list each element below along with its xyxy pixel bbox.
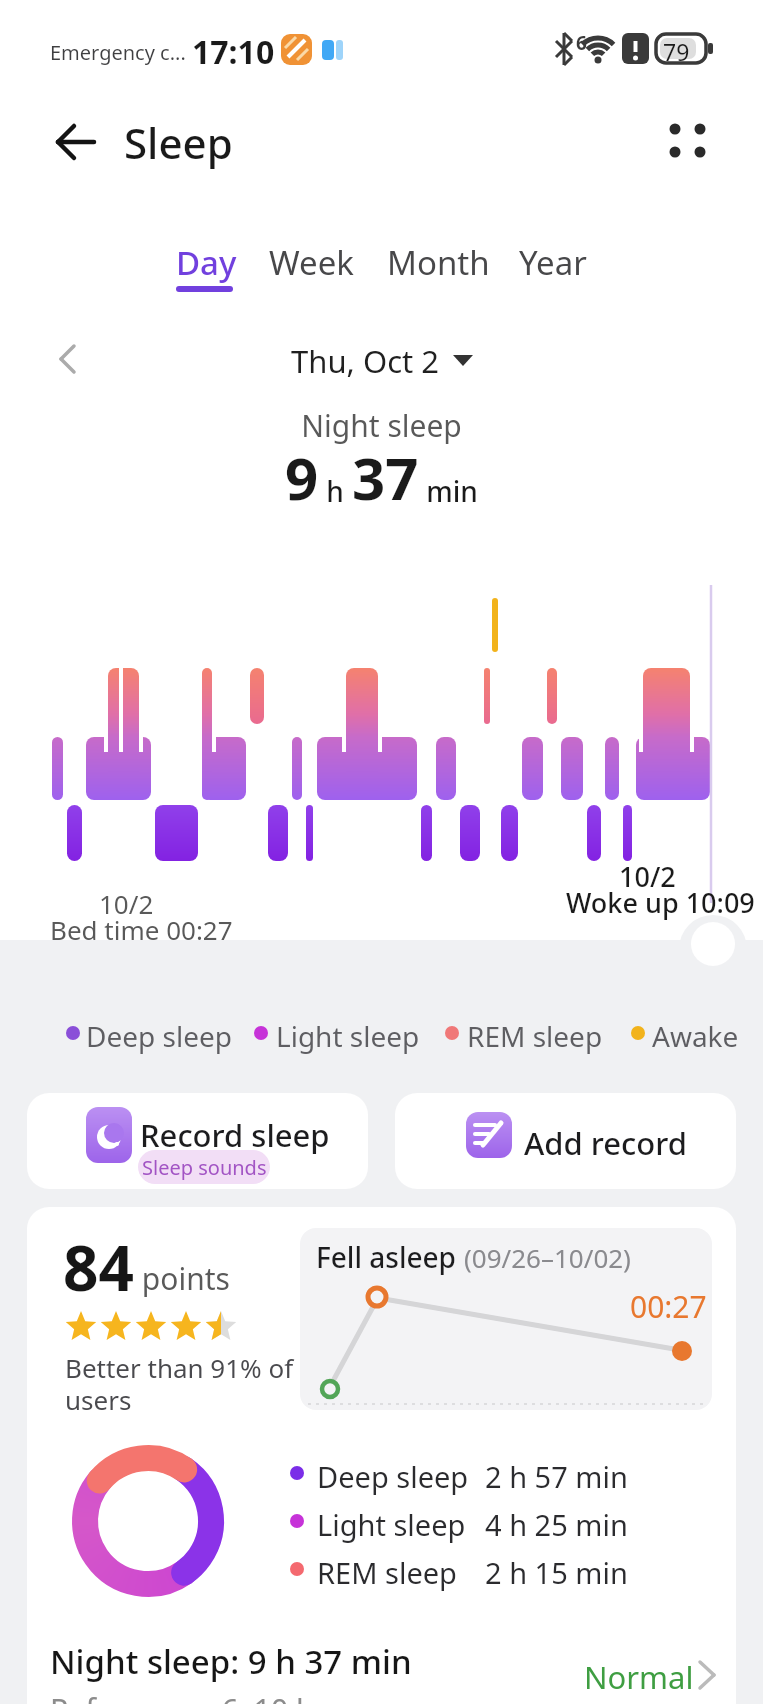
- staticText: REM sleep: [467, 1017, 603, 1055]
- staticText: users: [65, 1382, 132, 1417]
- button[interactable]: [48, 338, 92, 382]
- staticText: 37: [352, 438, 419, 517]
- staticText: 00:27: [630, 1286, 707, 1327]
- staticText: 6: [576, 30, 587, 56]
- staticText: Better than 91% of: [65, 1350, 294, 1385]
- staticText: 84: [63, 1225, 134, 1309]
- staticText: Add record: [524, 1122, 687, 1164]
- staticText: Night sleep: 9 h 37 min: [50, 1639, 412, 1684]
- button[interactable]: Year: [519, 240, 587, 285]
- staticText: Sleep: [124, 114, 233, 171]
- staticText: REM sleep: [317, 1553, 457, 1592]
- staticText: 79: [663, 36, 690, 67]
- staticText: Woke up 10:09: [566, 884, 755, 921]
- staticText: Deep sleep: [317, 1457, 469, 1496]
- staticText: Emergency c...: [50, 39, 186, 66]
- staticText: 2 h 15 min: [485, 1553, 628, 1592]
- staticText: Fell asleep: [316, 1238, 464, 1276]
- staticText: 2 h 57 min: [485, 1457, 628, 1496]
- button[interactable]: Month: [387, 240, 490, 285]
- staticText: Night sleep: [0, 405, 763, 446]
- staticText: 10/2: [99, 886, 154, 921]
- button[interactable]: Record sleep: [27, 1093, 368, 1189]
- staticText: Bed time 00:27: [50, 912, 233, 947]
- staticText: Deep sleep: [86, 1017, 232, 1055]
- staticText: Normal: [584, 1656, 694, 1698]
- staticText: (09/26–10/02): [464, 1240, 631, 1275]
- button[interactable]: Week: [269, 240, 354, 285]
- button[interactable]: [655, 115, 715, 175]
- staticText: Light sleep: [317, 1505, 466, 1544]
- button[interactable]: Day: [176, 240, 237, 285]
- staticText: Awake: [652, 1017, 739, 1055]
- staticText: References: 6–10 h: [50, 1689, 315, 1704]
- staticText: 17:10: [192, 30, 275, 74]
- staticText: points: [134, 1258, 230, 1299]
- staticText: Sleep sounds: [142, 1154, 267, 1181]
- button[interactable]: [40, 112, 100, 172]
- button[interactable]: Thu, Oct 2: [291, 340, 473, 380]
- staticText: 4 h 25 min: [485, 1505, 628, 1544]
- button[interactable]: [50, 1632, 736, 1692]
- staticText: 10/2: [619, 858, 676, 895]
- button[interactable]: Add record: [395, 1093, 736, 1189]
- staticText: Record sleep: [140, 1114, 330, 1156]
- staticText: 9: [285, 438, 319, 517]
- staticText: h: [319, 472, 352, 510]
- staticText: Thu, Oct 2: [291, 340, 439, 380]
- staticText: Light sleep: [276, 1017, 420, 1055]
- staticText: min: [419, 472, 478, 510]
